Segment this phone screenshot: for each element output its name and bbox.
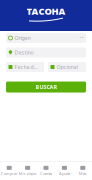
staticText: Más [79,171,87,176]
staticText: Fecha de ida [14,63,39,71]
staticText: Comprar [1,171,18,176]
staticText: Mis viajes [19,171,37,176]
button[interactable]: Destino [6,47,86,57]
button[interactable]: Mis viajes [18,166,37,176]
staticText: Destino [14,49,33,56]
button[interactable]: Ayuda [55,166,74,176]
staticText: Cuenta [40,171,52,176]
button[interactable]: Comprar [0,166,18,176]
staticText: Origen [14,34,30,42]
staticText: BUSCAR [35,83,56,91]
button[interactable]: Fecha de ida [6,62,44,72]
button[interactable]: Más [74,166,92,176]
staticText: Ayuda [59,171,70,176]
staticText: Opcional [56,63,77,71]
button[interactable]: Origen [6,33,86,43]
button[interactable]: Opcional [48,62,86,72]
button[interactable]: BUSCAR [6,81,86,92]
button[interactable]: Cuenta [37,166,55,176]
staticText: TACOHA [26,5,65,17]
